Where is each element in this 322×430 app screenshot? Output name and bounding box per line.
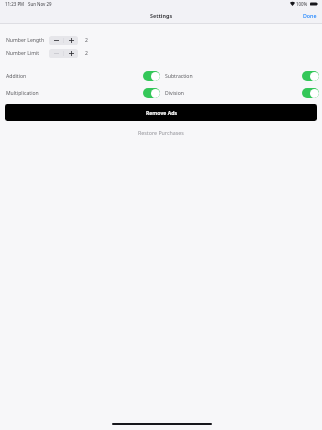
button[interactable]: Division (302, 88, 319, 98)
staticText: 11:23 PM (5, 1, 25, 7)
staticText: Division (165, 90, 184, 97)
staticText: 2 (85, 37, 88, 44)
button[interactable]: Division (165, 86, 319, 100)
staticText: Number Length (6, 37, 45, 44)
staticText: Restore Purchases (138, 129, 184, 136)
staticText: 2 (85, 50, 88, 57)
button[interactable]: Restore Purchases (0, 129, 322, 136)
button[interactable]: Done (298, 9, 322, 22)
staticText: Remove Ads (146, 109, 177, 116)
button[interactable]: Decrease (49, 36, 63, 45)
button[interactable]: Subtraction (302, 71, 319, 81)
staticText: Sun Nov 29 (28, 1, 52, 7)
staticText: Addition (6, 73, 27, 80)
button[interactable]: Multiplication (6, 86, 160, 100)
staticText: Done (303, 12, 317, 19)
staticText: Subtraction (165, 73, 193, 80)
button[interactable]: Subtraction (165, 69, 319, 83)
staticText: Multiplication (6, 90, 39, 97)
button[interactable]: Addition (6, 69, 160, 83)
button[interactable]: Remove Ads (5, 104, 317, 121)
staticText: Settings (150, 12, 173, 19)
button[interactable]: Multiplication (143, 88, 160, 98)
button[interactable]: Decrease (49, 49, 63, 58)
staticText: 100% (296, 1, 308, 7)
button[interactable]: Increase (64, 36, 78, 45)
staticText: Number Limit (6, 50, 40, 57)
button[interactable]: Addition (143, 71, 160, 81)
button[interactable]: Increase (64, 49, 78, 58)
